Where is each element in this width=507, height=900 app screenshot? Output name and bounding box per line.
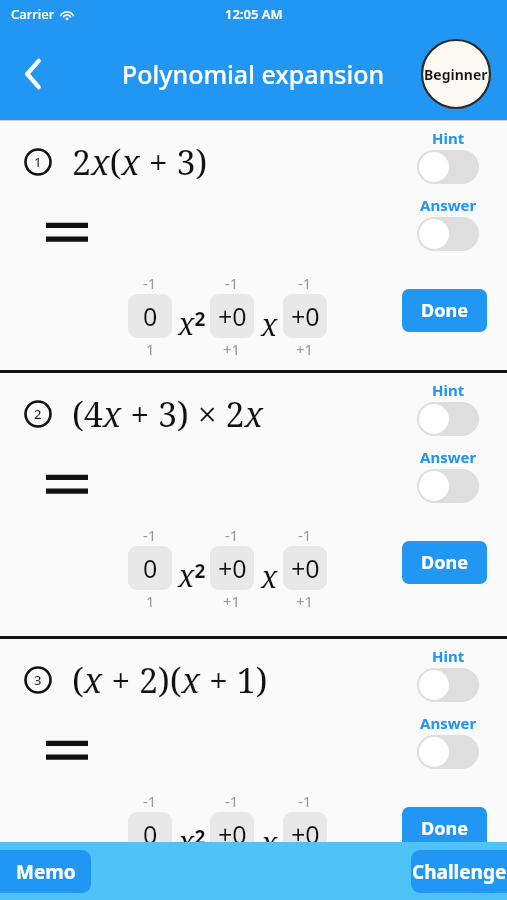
staticText: -1: [143, 525, 157, 545]
button[interactable]: Done: [402, 807, 487, 850]
staticText: +0: [291, 299, 320, 333]
staticText: -1: [298, 273, 312, 293]
staticText: x: [261, 304, 278, 345]
button[interactable]: Answer: [417, 469, 479, 503]
staticText: 0: [143, 299, 158, 333]
staticText: Challenge: [412, 859, 507, 885]
button[interactable]: 0: [128, 812, 172, 856]
staticText: +0: [291, 817, 320, 851]
staticText: +1: [223, 591, 241, 611]
staticText: Done: [421, 298, 468, 323]
button[interactable]: Challenge: [411, 850, 507, 893]
staticText: +0: [218, 817, 247, 851]
button[interactable]: +0: [283, 546, 327, 590]
button[interactable]: +0: [210, 812, 254, 856]
staticText: 0: [143, 817, 158, 851]
button[interactable]: Hint: [417, 402, 479, 436]
staticText: 1: [34, 153, 42, 171]
staticText: x2: [178, 821, 206, 862]
button[interactable]: 2: [0, 373, 507, 636]
staticText: Answer: [420, 195, 477, 215]
staticText: Hint: [432, 380, 465, 400]
staticText: 2: [34, 405, 42, 423]
staticText: 0: [143, 551, 158, 585]
button[interactable]: 0: [128, 294, 172, 338]
button[interactable]: +0: [210, 294, 254, 338]
staticText: +1: [296, 591, 314, 611]
staticText: 1: [146, 591, 155, 611]
button[interactable]: +0: [210, 546, 254, 590]
staticText: Done: [421, 550, 468, 575]
button[interactable]: Done: [402, 289, 487, 332]
button[interactable]: Hint: [417, 668, 479, 702]
staticText: Carrier: [11, 5, 55, 23]
staticText: +1: [296, 339, 314, 359]
staticText: -1: [225, 273, 239, 293]
button[interactable]: Done: [402, 541, 487, 584]
button[interactable]: Beginner: [420, 38, 492, 110]
staticText: -1: [143, 273, 157, 293]
staticText: Memo: [16, 859, 76, 885]
staticText: x2: [178, 555, 206, 596]
staticText: -1: [225, 791, 239, 811]
staticText: -1: [298, 791, 312, 811]
staticText: x2: [178, 303, 206, 344]
staticText: x: [261, 822, 278, 863]
staticText: Polynomial expansion: [122, 57, 385, 91]
button[interactable]: Memo: [0, 850, 91, 893]
button[interactable]: Answer: [417, 735, 479, 769]
button[interactable]: Answer: [417, 217, 479, 251]
staticText: (x + 2)(x + 1): [72, 657, 268, 703]
staticText: +0: [218, 551, 247, 585]
button[interactable]: +0: [283, 812, 327, 856]
staticText: Beginner: [424, 65, 488, 84]
staticText: Hint: [432, 646, 465, 666]
staticText: x: [261, 556, 278, 597]
button[interactable]: 3: [0, 639, 507, 842]
button[interactable]: +0: [283, 294, 327, 338]
button[interactable]: Back: [6, 47, 60, 101]
staticText: Answer: [420, 713, 477, 733]
staticText: 1: [146, 339, 155, 359]
button[interactable]: Hint: [417, 150, 479, 184]
staticText: Done: [421, 816, 468, 841]
staticText: Hint: [432, 128, 465, 148]
staticText: -1: [225, 525, 239, 545]
staticText: (4x + 3) × 2x: [72, 391, 264, 437]
staticText: Answer: [420, 447, 477, 467]
button[interactable]: 0: [128, 546, 172, 590]
button[interactable]: 1: [0, 121, 507, 370]
staticText: 2x(x + 3): [72, 139, 208, 185]
staticText: 12:05 AM: [225, 5, 283, 23]
staticText: +1: [223, 339, 241, 359]
staticText: +0: [218, 299, 247, 333]
staticText: -1: [298, 525, 312, 545]
staticText: 3: [34, 671, 42, 689]
staticText: -1: [143, 791, 157, 811]
staticText: +0: [291, 551, 320, 585]
